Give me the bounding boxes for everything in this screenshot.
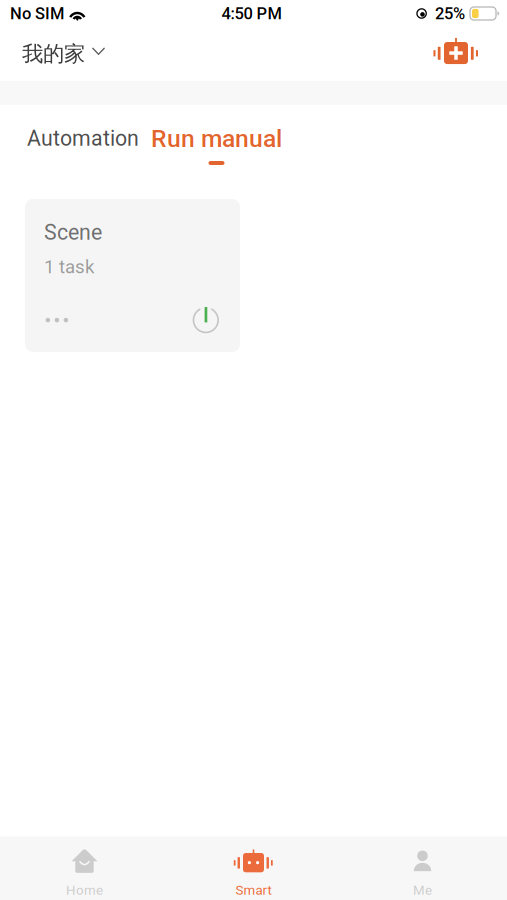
- staticText: Me: [413, 882, 432, 898]
- button[interactable]: Add device: [430, 32, 482, 76]
- button[interactable]: 我的家: [22, 33, 105, 75]
- staticText: No SIM: [10, 4, 64, 23]
- staticText: Run manual: [151, 124, 282, 153]
- staticText: Home: [66, 882, 103, 898]
- button[interactable]: Run scene: [193, 306, 219, 334]
- staticText: 25%: [435, 4, 465, 23]
- button[interactable]: Home: [0, 836, 169, 900]
- staticText: 1 task: [44, 256, 94, 278]
- button[interactable]: Run manual: [151, 105, 282, 170]
- button[interactable]: Me: [338, 836, 507, 900]
- button[interactable]: Automation: [27, 105, 139, 170]
- button[interactable]: More options: [44, 307, 70, 334]
- button[interactable]: Smart: [169, 836, 338, 900]
- button[interactable]: Scene: [25, 199, 240, 352]
- staticText: Smart: [235, 882, 271, 898]
- staticText: Scene: [44, 220, 102, 245]
- staticText: 4:50 PM: [221, 4, 281, 23]
- staticText: Automation: [27, 126, 139, 151]
- staticText: 我的家: [22, 41, 85, 67]
